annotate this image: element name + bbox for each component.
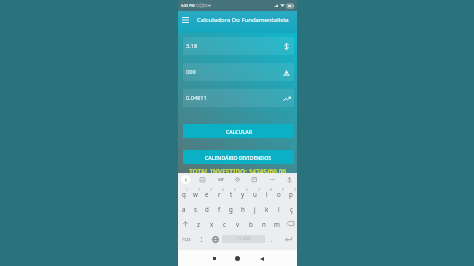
staticText: . [271,235,273,243]
button[interactable]: GIF [216,175,225,184]
staticText: t [230,190,233,198]
button[interactable]: v [231,216,244,231]
button[interactable]: l [273,201,285,216]
staticText: 0.04811 [186,94,207,102]
staticText: q [182,190,186,198]
button[interactable]: More options [268,175,277,184]
button[interactable]: r [213,186,225,201]
staticText: h [241,205,245,213]
button[interactable]: Recent apps [208,252,221,265]
button[interactable]: t [225,186,237,201]
button[interactable]: ç [285,201,297,216]
staticText: z [197,220,200,228]
button[interactable]: b [244,216,257,231]
staticText: ?123 [182,237,191,242]
staticText: o [277,190,281,198]
staticText: v [236,220,240,228]
staticText: 5 [234,188,236,192]
button[interactable]: g [225,201,237,216]
button[interactable]: f [213,201,225,216]
staticText: 2 [198,188,200,192]
staticText: CALENDÁRIO DIVIDENDOS [205,154,272,161]
button[interactable]: y [237,186,249,201]
button[interactable]: p [285,186,297,201]
button[interactable]: a [178,201,189,216]
button[interactable]: m [270,216,283,231]
button[interactable]: Voice input [285,175,294,184]
button[interactable]: Stickers [250,175,259,184]
button[interactable]: o [273,186,285,201]
button[interactable]: Back [181,175,190,184]
staticText: m [274,220,280,228]
button[interactable]: 0.04811 [183,89,294,107]
button[interactable]: CALCULAR [183,124,294,138]
button[interactable]: q [178,186,189,201]
button[interactable]: x [205,216,218,231]
button[interactable]: Enter [279,231,297,247]
staticText: 1 [186,188,188,192]
staticText: 3:32 PM [181,3,195,8]
button[interactable]: 000 [183,63,294,81]
staticText: 3 [210,188,212,192]
staticText: w [193,190,198,198]
staticText: b [249,220,253,228]
staticText: r [218,190,221,198]
button[interactable]: Clipboard [198,175,207,184]
staticText: c [223,220,226,228]
staticText: CALCULAR [226,128,252,135]
button[interactable]: Emoji [195,231,208,247]
button[interactable]: k [261,201,273,216]
staticText: 8 [270,188,272,192]
staticText: 4 [222,188,224,192]
button[interactable]: Change language [208,231,222,247]
button[interactable]: e [201,186,213,201]
staticText: e [205,190,209,198]
staticText: s [194,205,197,213]
button[interactable]: Open navigation menu [179,14,191,26]
staticText: i [266,190,268,198]
button[interactable]: i [261,186,273,201]
button[interactable]: n [257,216,270,231]
button[interactable]: Home [231,252,244,265]
button[interactable]: h [237,201,249,216]
staticText: n [262,220,266,228]
button[interactable]: z [192,216,205,231]
staticText: l [278,205,280,213]
staticText: j [254,205,256,213]
staticText: a [182,205,186,213]
staticText: 9 [282,188,284,192]
button[interactable]: j [249,201,261,216]
staticText: 6 [246,188,248,192]
button[interactable]: . [265,231,279,247]
button[interactable]: Settings [233,175,242,184]
staticText: TOTAL INVESTIDO: 14745/60.00 [178,167,297,173]
staticText: u [253,190,257,198]
button[interactable]: d [201,201,213,216]
staticText: 7 [258,188,260,192]
staticText: Calculadora Do Fundamentalista [197,16,289,24]
button[interactable]: Back [255,252,268,265]
button[interactable]: w [189,186,201,201]
staticText: ç [290,205,293,213]
staticText: y [241,190,245,198]
staticText: x [210,220,214,228]
staticText: f [218,205,221,213]
staticText: d [205,205,209,213]
button[interactable]: u [249,186,261,201]
staticText: 3.18 [186,42,198,50]
button[interactable]: PT (BR) [222,235,265,243]
staticText: 000 [186,68,196,76]
staticText: 0 [294,188,296,192]
button[interactable]: CALENDÁRIO DIVIDENDOS [183,150,294,164]
staticText: g [229,205,233,213]
staticText: k [265,205,269,213]
staticText: p [289,190,293,198]
button[interactable]: s [189,201,201,216]
button[interactable]: c [218,216,231,231]
button[interactable]: ?123 [178,231,195,247]
button[interactable]: Shift [178,216,192,231]
staticText: PT (BR) [237,236,251,242]
button[interactable]: 3.18 [183,37,294,55]
button[interactable]: Backspace [283,216,297,231]
staticText: GIF [218,177,224,182]
